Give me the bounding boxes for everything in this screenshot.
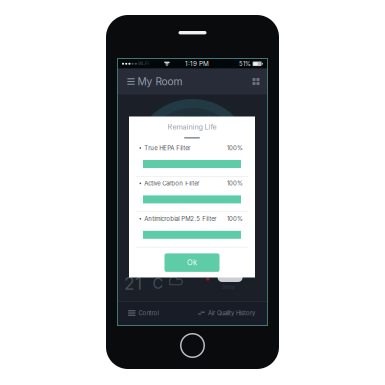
button[interactable]: Control: [118, 301, 192, 325]
staticText: C: [152, 274, 163, 292]
staticText: 51%: [239, 60, 251, 67]
staticText: 21: [124, 273, 142, 294]
button[interactable]: Menu: [124, 71, 137, 91]
staticText: 100%: [227, 180, 243, 187]
staticText: 100%: [227, 144, 243, 152]
staticText: Sleep: [222, 284, 235, 290]
button[interactable]: Power: [218, 273, 243, 282]
staticText: 1:19 PM: [185, 60, 209, 68]
staticText: Air Quality History: [208, 309, 255, 317]
button[interactable]: Ok: [164, 253, 219, 272]
button[interactable]: Devices: [249, 71, 263, 91]
staticText: True HEPA Filter: [144, 144, 190, 152]
staticText: Remaining Life: [167, 123, 216, 131]
button[interactable]: Air Quality History: [192, 301, 267, 325]
staticText: 100%: [227, 215, 243, 222]
staticText: Control: [138, 309, 158, 317]
staticText: Antimicrobial PM2.5 Filter: [144, 215, 216, 222]
staticText: Wi-Fi: [137, 61, 149, 66]
staticText: Ok: [187, 258, 197, 267]
staticText: My Room: [137, 75, 182, 88]
staticText: Active Carbon Filter: [144, 180, 199, 187]
